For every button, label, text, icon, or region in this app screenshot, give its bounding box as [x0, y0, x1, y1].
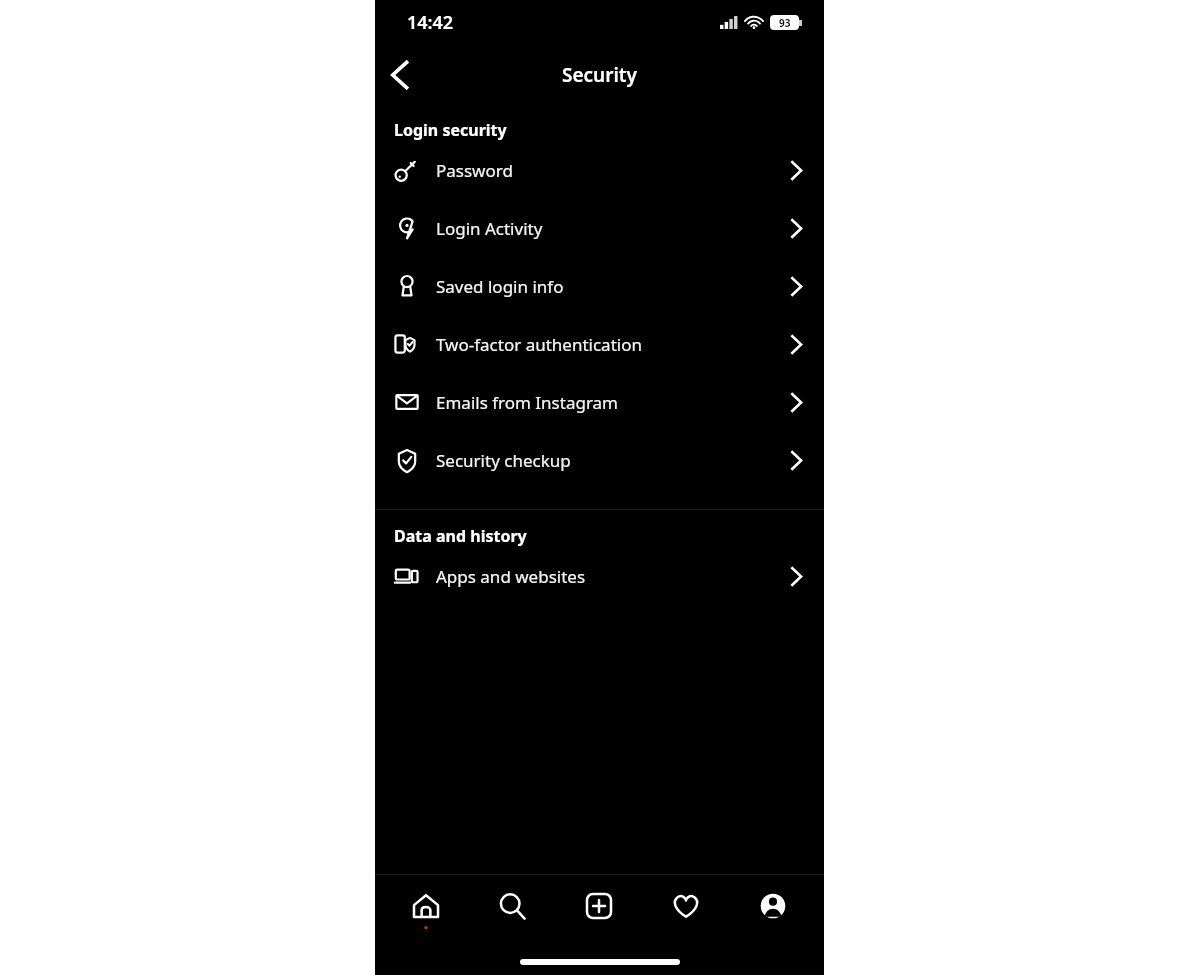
- button[interactable]: Search: [469, 875, 555, 937]
- staticText: Login Activity: [436, 217, 543, 240]
- button[interactable]: Security checkup: [375, 431, 824, 489]
- staticText: Two-factor authentication: [436, 333, 642, 356]
- button[interactable]: Create: [555, 875, 642, 937]
- button[interactable]: Activity: [642, 875, 729, 937]
- staticText: Login security: [394, 119, 507, 141]
- button[interactable]: Password: [375, 141, 824, 199]
- staticText: Security: [562, 62, 637, 88]
- button[interactable]: Two-factor authentication: [375, 315, 824, 373]
- staticText: Saved login info: [436, 275, 564, 298]
- button[interactable]: Login Activity: [375, 199, 824, 257]
- button[interactable]: Profile: [729, 875, 816, 937]
- staticText: Data and history: [394, 525, 527, 547]
- button[interactable]: Apps and websites: [375, 547, 824, 605]
- staticText: Apps and websites: [436, 565, 586, 588]
- button[interactable]: Home: [383, 875, 469, 937]
- staticText: Password: [436, 159, 513, 182]
- staticText: 93: [779, 16, 791, 30]
- staticText: 14:42: [407, 10, 454, 35]
- staticText: Emails from Instagram: [436, 391, 619, 414]
- button[interactable]: Emails from Instagram: [375, 373, 824, 431]
- button[interactable]: Saved login info: [375, 257, 824, 315]
- button[interactable]: Back: [375, 51, 423, 99]
- staticText: Security checkup: [436, 449, 571, 472]
